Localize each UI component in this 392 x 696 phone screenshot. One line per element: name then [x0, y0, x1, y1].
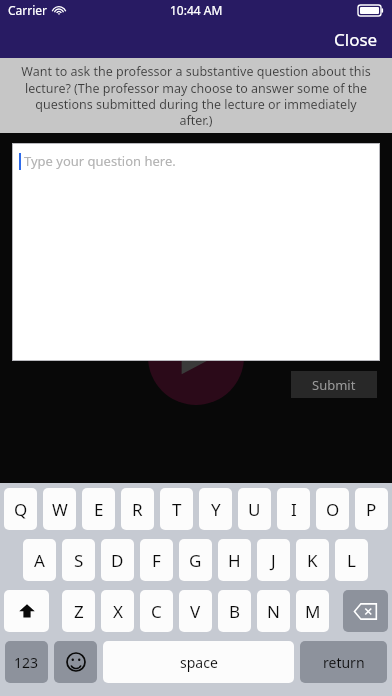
button[interactable]: Q — [4, 488, 37, 530]
staticText: J — [271, 549, 276, 572]
button[interactable]: U — [238, 488, 271, 530]
staticText: space — [180, 653, 218, 672]
staticText: A — [34, 549, 45, 572]
staticText: N — [267, 600, 280, 623]
button[interactable]: P — [355, 488, 388, 530]
button[interactable]: Close — [320, 22, 392, 57]
button[interactable]: Shift — [4, 590, 49, 632]
button[interactable]: Y — [199, 488, 232, 530]
staticText: T — [172, 498, 182, 521]
button[interactable]: C — [140, 590, 173, 632]
staticText: E — [94, 498, 104, 521]
staticText: 123 — [14, 653, 39, 672]
staticText: Want to ask the professor a substantive … — [18, 63, 374, 128]
button[interactable]: J — [257, 539, 290, 581]
button[interactable]: return — [300, 641, 387, 683]
staticText: 10:44 AM — [170, 2, 223, 18]
staticText: U — [248, 498, 261, 521]
staticText: Y — [211, 498, 221, 521]
staticText: B — [229, 600, 241, 623]
button[interactable]: Z — [62, 590, 95, 632]
button[interactable]: F — [140, 539, 173, 581]
button[interactable]: V — [179, 590, 212, 632]
button[interactable]: T — [160, 488, 193, 530]
button[interactable]: D — [101, 539, 134, 581]
button[interactable]: X — [101, 590, 134, 632]
staticText: P — [366, 498, 377, 521]
staticText: O — [326, 498, 340, 521]
staticText: H — [228, 549, 241, 572]
staticText: S — [74, 549, 84, 572]
staticText: D — [111, 549, 124, 572]
button[interactable]: 123 — [5, 641, 48, 683]
button[interactable]: space — [103, 641, 294, 683]
staticText: Close — [334, 28, 378, 51]
button[interactable]: K — [296, 539, 329, 581]
staticText: Q — [14, 498, 28, 521]
staticText: I — [291, 498, 297, 521]
button[interactable]: Backspace — [343, 590, 388, 632]
button[interactable]: S — [62, 539, 95, 581]
staticText: return — [323, 653, 365, 672]
button[interactable]: L — [335, 539, 368, 581]
button[interactable]: I — [277, 488, 310, 530]
button[interactable]: N — [257, 590, 290, 632]
staticText: C — [151, 600, 162, 623]
staticText: Type your question here. — [24, 152, 176, 170]
button[interactable]: G — [179, 539, 212, 581]
staticText: V — [190, 600, 201, 623]
button[interactable]: M — [296, 590, 329, 632]
staticText: Z — [74, 600, 84, 623]
staticText: R — [132, 498, 143, 521]
staticText: G — [189, 549, 202, 572]
staticText: F — [152, 549, 161, 572]
button[interactable]: Emoji — [54, 641, 97, 683]
staticText: M — [305, 600, 321, 623]
button[interactable]: A — [23, 539, 56, 581]
button[interactable]: W — [43, 488, 76, 530]
staticText: L — [347, 549, 356, 572]
button[interactable]: B — [218, 590, 251, 632]
button[interactable]: R — [121, 488, 154, 530]
staticText: X — [113, 600, 123, 623]
button[interactable]: E — [82, 488, 115, 530]
button[interactable]: O — [316, 488, 349, 530]
staticText: K — [307, 549, 318, 572]
staticText: Carrier — [8, 2, 48, 18]
button[interactable]: Type your question here. — [13, 144, 379, 360]
button[interactable]: H — [218, 539, 251, 581]
staticText: W — [52, 498, 68, 521]
button[interactable]: Submit — [291, 371, 377, 398]
staticText: Submit — [312, 376, 356, 394]
